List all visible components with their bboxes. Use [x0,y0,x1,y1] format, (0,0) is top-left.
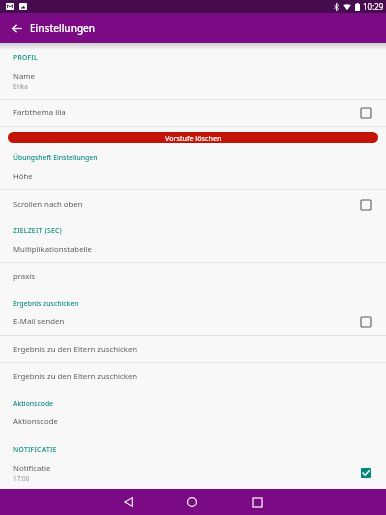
button[interactable]: Home [175,489,208,515]
staticText: Ergebnis zuschicken [13,299,79,308]
button[interactable]: Vorstufe löschen [8,132,378,143]
button[interactable]: Notificatie [0,459,386,486]
staticText: NOTIFICATIE [13,445,57,454]
button[interactable]: E-Mail senden [0,308,386,335]
button[interactable]: Multiplikationstabelle [0,236,386,263]
staticText: Farbthema lila [13,107,66,118]
staticText: ZIELZEIT (SEC) [13,226,62,235]
button[interactable]: Back [0,13,33,43]
button[interactable]: Unchecked [359,106,373,120]
staticText: Höhe [13,171,33,182]
staticText: Name [13,71,35,82]
button[interactable]: praxis [0,263,386,290]
button[interactable]: Farbthema lila [0,99,386,126]
button[interactable]: Aktionscode [0,408,386,435]
button[interactable]: Unchecked [359,315,373,329]
button[interactable]: Ergebnis zu den Eltern zuschicken [0,363,386,390]
button[interactable]: Höhe [0,163,386,190]
staticText: Ergebnis zu den Eltern zuschicken [13,371,138,382]
staticText: praxis [13,271,36,282]
staticText: Einstellungen [30,21,96,35]
staticText: E-Mail senden [13,316,65,327]
staticText: Multiplikationstabelle [13,244,92,255]
staticText: 17:00 [13,474,30,483]
button[interactable]: Ergebnis zu den Eltern zuschicken [0,336,386,363]
staticText: Übungsheft Einstellungen [13,153,98,162]
staticText: Erika [13,82,28,91]
staticText: 10:29 [363,1,384,12]
staticText: Aktionscode [13,416,58,427]
button[interactable]: Back [112,489,145,515]
staticText: Scrollen nach oben [13,199,83,210]
button[interactable]: Checked [359,466,373,480]
button[interactable]: Unchecked [359,198,373,212]
button[interactable]: Scrollen nach oben [0,191,386,218]
button[interactable]: Name [0,67,386,95]
staticText: Aktionscode [13,399,54,408]
staticText: Notificatie [13,463,51,474]
staticText: Ergebnis zu den Eltern zuschicken [13,344,138,355]
button[interactable]: Recent apps [241,489,274,515]
staticText: Vorstufe löschen [165,133,222,143]
staticText: PROFIL [13,53,38,62]
